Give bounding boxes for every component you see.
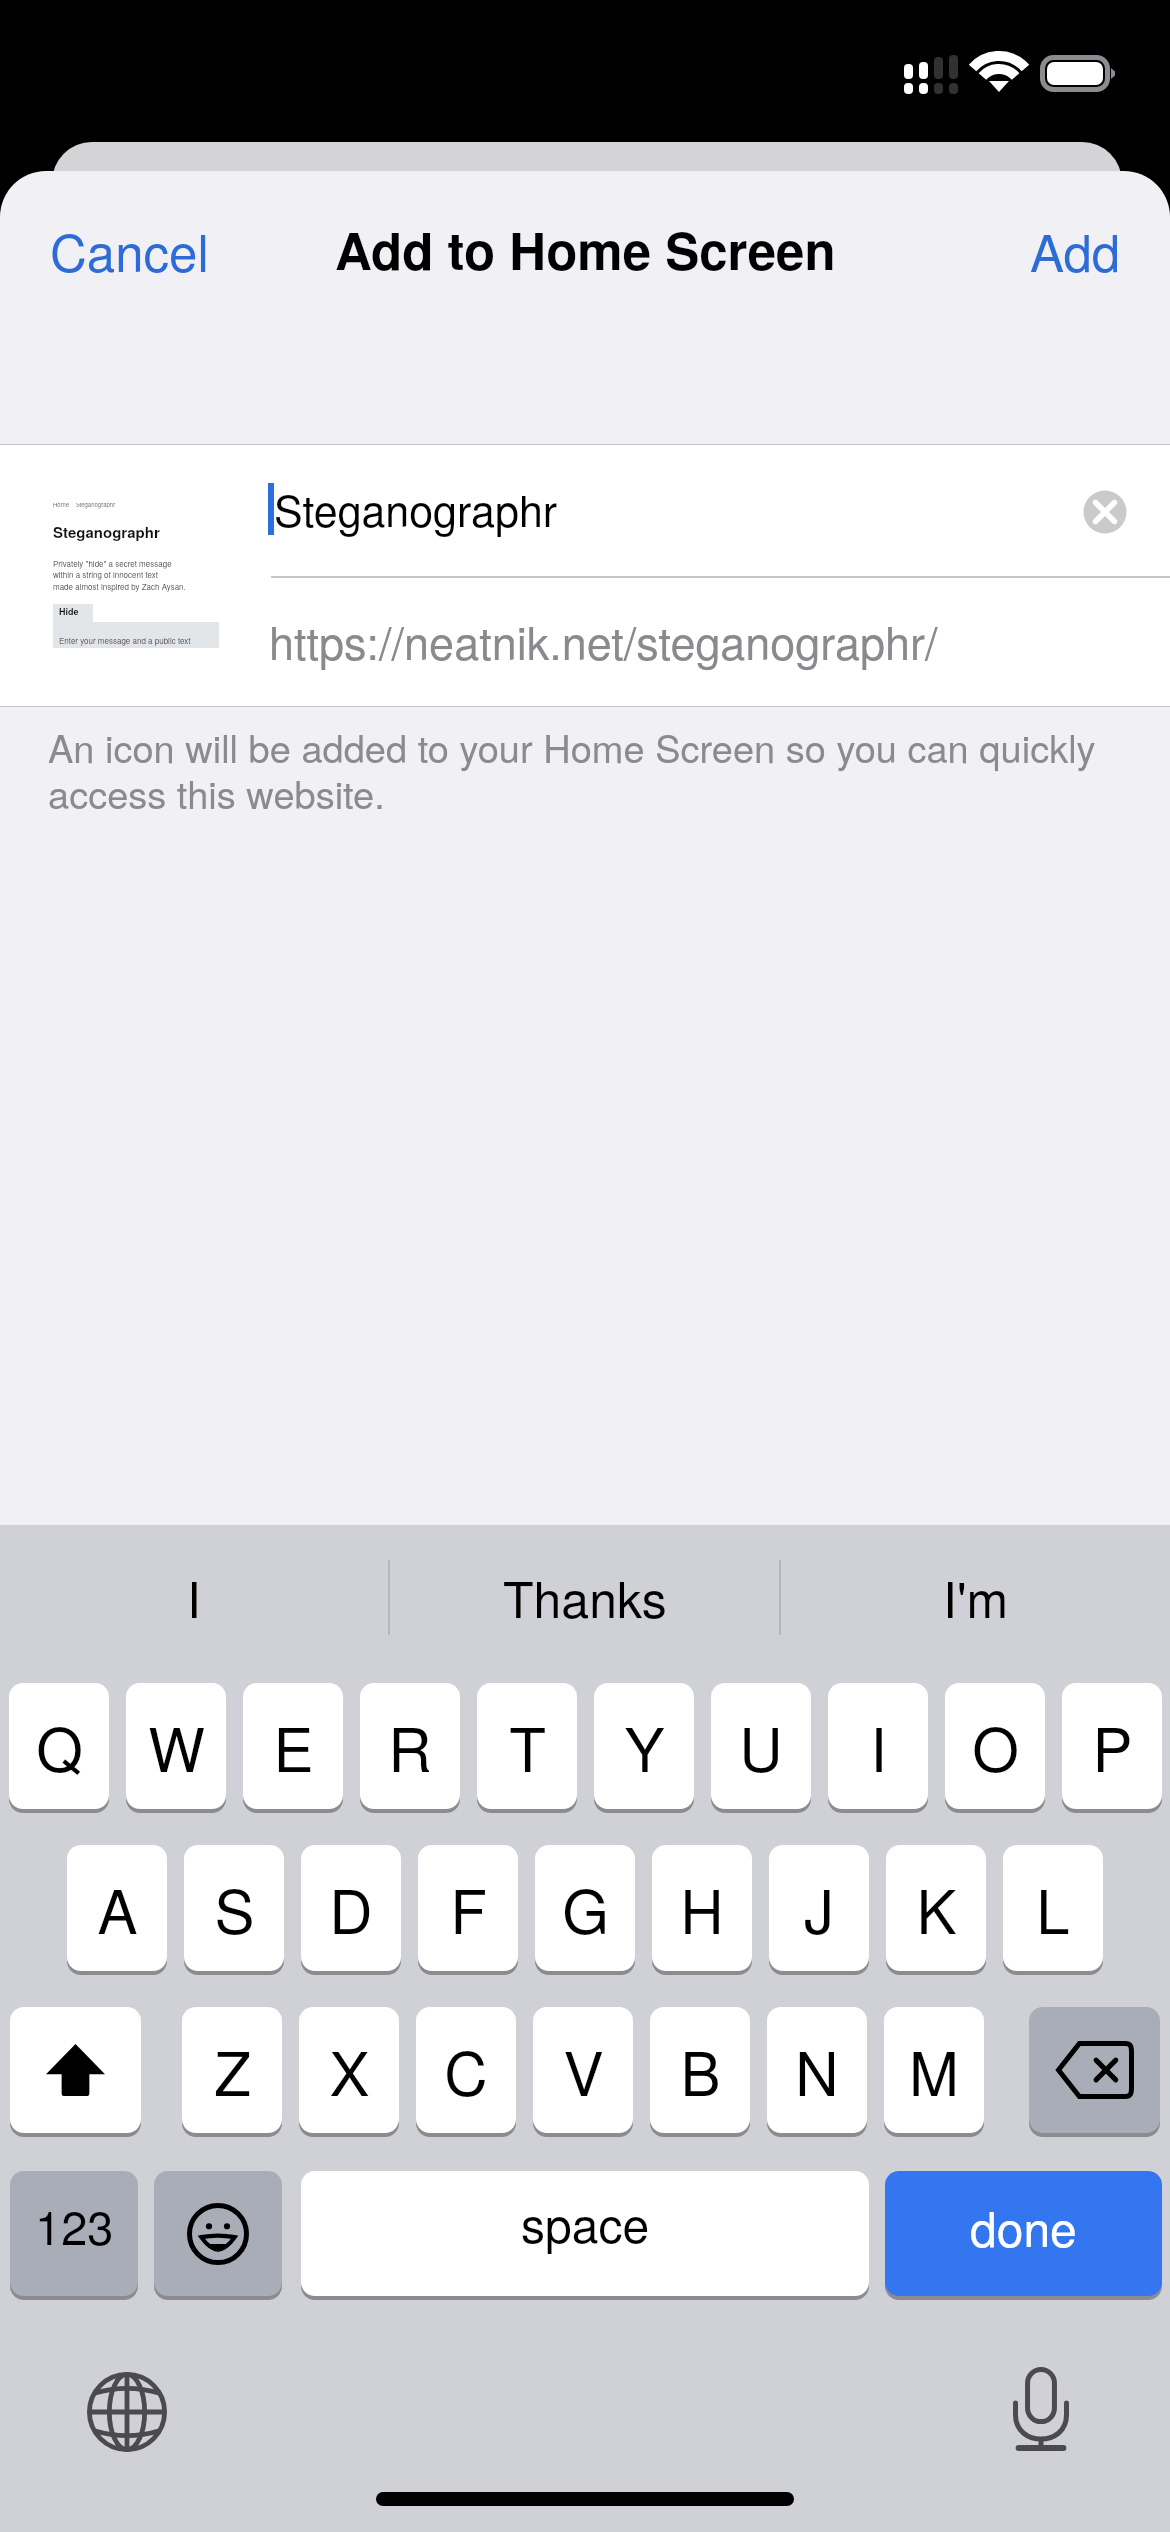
staticText: A <box>97 1865 138 1951</box>
button[interactable]: T <box>477 1683 577 1809</box>
button[interactable]: Backspace <box>1029 2007 1160 2133</box>
staticText: Steganographr <box>53 521 160 542</box>
button[interactable]: Y <box>594 1683 694 1809</box>
staticText: L <box>1036 1865 1070 1951</box>
staticText: Thanks <box>503 1561 667 1633</box>
button[interactable]: C <box>416 2007 516 2133</box>
button[interactable]: A <box>67 1845 167 1971</box>
button[interactable]: Switch keyboard <box>84 2369 170 2455</box>
staticText: H <box>680 1865 724 1951</box>
button[interactable]: M <box>884 2007 984 2133</box>
staticText: https://neatnik.net/steganographr/ <box>269 608 938 672</box>
staticText: G <box>562 1865 609 1951</box>
staticText: T <box>509 1703 546 1789</box>
staticText: D <box>329 1865 373 1951</box>
staticText: P <box>1092 1703 1133 1789</box>
button[interactable]: Add <box>1002 199 1149 300</box>
button[interactable]: Q <box>9 1683 109 1809</box>
button[interactable]: B <box>650 2007 750 2133</box>
staticText: E <box>273 1703 314 1789</box>
button[interactable]: K <box>886 1845 986 1971</box>
staticText: Home Steganographr <box>53 503 116 509</box>
button[interactable]: Clear text <box>1076 483 1134 541</box>
button[interactable]: U <box>711 1683 811 1809</box>
button[interactable]: E <box>243 1683 343 1809</box>
staticText: I <box>870 1703 887 1789</box>
staticText: Steganographr <box>274 478 558 540</box>
staticText: B <box>680 2027 721 2113</box>
staticText: X <box>329 2027 370 2113</box>
button[interactable]: N <box>767 2007 867 2133</box>
staticText: Enter your message and a public text <box>59 635 191 646</box>
staticText: O <box>972 1703 1019 1789</box>
staticText: J <box>804 1865 834 1951</box>
button[interactable]: Dictation <box>998 2365 1084 2451</box>
staticText: M <box>909 2027 959 2113</box>
staticText: Z <box>214 2027 251 2113</box>
button[interactable]: P <box>1062 1683 1162 1809</box>
staticText: Q <box>36 1703 83 1789</box>
button[interactable]: L <box>1003 1845 1103 1971</box>
button[interactable]: R <box>360 1683 460 1809</box>
button[interactable]: F <box>418 1845 518 1971</box>
button[interactable]: Cancel <box>22 199 237 300</box>
staticText: C <box>444 2027 488 2113</box>
staticText: Y <box>624 1703 665 1789</box>
staticText: W <box>148 1703 205 1789</box>
staticText: Add to Home Screen <box>335 213 836 286</box>
button[interactable]: J <box>769 1845 869 1971</box>
button[interactable]: Thanks <box>390 1525 779 1655</box>
staticText: F <box>450 1865 487 1951</box>
button[interactable]: S <box>184 1845 284 1971</box>
button[interactable]: I'm <box>781 1525 1170 1655</box>
button[interactable]: Emoji <box>154 2171 282 2296</box>
button[interactable]: Shift <box>10 2007 141 2133</box>
staticText: U <box>739 1703 783 1789</box>
button[interactable]: X <box>299 2007 399 2133</box>
button[interactable]: done <box>885 2171 1162 2296</box>
button[interactable]: space <box>301 2171 869 2296</box>
button[interactable]: Numbers <box>10 2171 138 2296</box>
staticText: K <box>916 1865 957 1951</box>
button[interactable]: H <box>652 1845 752 1971</box>
button[interactable]: I <box>828 1683 928 1809</box>
staticText: An icon will be added to your Home Scree… <box>48 719 1140 820</box>
staticText: Cancel <box>50 213 209 286</box>
staticText: 123 <box>35 2191 114 2258</box>
staticText: space <box>521 2188 650 2257</box>
button[interactable]: Z <box>182 2007 282 2133</box>
staticText: I <box>187 1561 201 1633</box>
button[interactable]: G <box>535 1845 635 1971</box>
staticText: done <box>970 2192 1077 2261</box>
button[interactable]: W <box>126 1683 226 1809</box>
staticText: Hide <box>59 605 79 618</box>
staticText: I'm <box>943 1561 1009 1633</box>
staticText: V <box>563 2027 604 2113</box>
staticText: Add <box>1030 213 1121 286</box>
staticText: R <box>388 1703 432 1789</box>
button[interactable]: D <box>301 1845 401 1971</box>
button[interactable]: I <box>0 1525 388 1655</box>
staticText: S <box>214 1865 255 1951</box>
staticText: N <box>795 2027 839 2113</box>
staticText: Privately "hide" a secret message within… <box>53 558 186 592</box>
button[interactable]: V <box>533 2007 633 2133</box>
button[interactable]: O <box>945 1683 1045 1809</box>
